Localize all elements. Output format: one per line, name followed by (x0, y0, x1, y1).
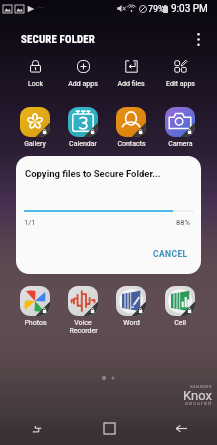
staticText: 1/1 (24, 218, 36, 227)
staticText: Knox (183, 388, 212, 403)
staticText: Contacts (117, 140, 146, 148)
staticText: Photos (24, 319, 47, 327)
staticText: Calendar (69, 140, 97, 148)
staticText: Edit apps (166, 80, 195, 88)
button[interactable]: Cell (153, 286, 207, 338)
button[interactable]: Home (73, 412, 145, 445)
staticText: 9:03 PM (171, 3, 208, 15)
button[interactable]: Lock (8, 59, 62, 93)
button[interactable]: More options (185, 26, 211, 52)
staticText: SECURE FOLDER (21, 33, 95, 46)
button[interactable]: Contacts (104, 107, 158, 159)
staticText: Word (123, 319, 140, 327)
staticText: Add files (117, 80, 145, 88)
button[interactable]: Photos (8, 286, 62, 338)
button[interactable]: Edit apps (153, 59, 207, 93)
staticText: ··· (38, 4, 44, 12)
staticText: 79% (148, 4, 165, 15)
button[interactable]: Gallery (8, 107, 62, 159)
staticText: Voice (74, 319, 92, 327)
button[interactable]: CANCEL (150, 244, 190, 264)
staticText: Lock (28, 80, 43, 88)
staticText: 88% (176, 218, 190, 227)
button[interactable]: Calendar (56, 107, 110, 159)
staticText: Copying files to Secure Folder... (25, 168, 195, 179)
staticText: Camera (168, 140, 193, 148)
button[interactable]: Voice (56, 286, 110, 338)
staticText: Cell (174, 319, 186, 327)
button[interactable]: Word (104, 286, 158, 338)
staticText: Gallery (24, 140, 46, 148)
staticText: Recorder (69, 327, 98, 335)
button[interactable]: Add files (104, 59, 158, 93)
staticText: secured (185, 399, 212, 406)
button[interactable]: Add apps (56, 59, 110, 93)
staticText: SAMSUNG (190, 384, 212, 389)
button[interactable]: Recents (0, 412, 73, 445)
staticText: Add apps (68, 80, 98, 88)
button[interactable]: Camera (153, 107, 207, 159)
button[interactable]: Back (145, 412, 217, 445)
staticText: CANCEL (153, 249, 188, 259)
